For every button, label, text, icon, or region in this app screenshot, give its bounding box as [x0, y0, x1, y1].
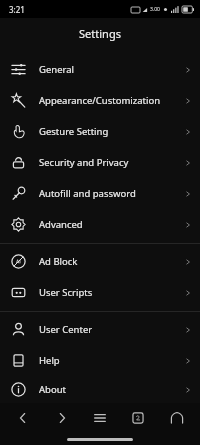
button[interactable]: General [0, 54, 200, 85]
button[interactable]: User Scripts [0, 277, 200, 308]
button[interactable]: Help [0, 345, 200, 376]
button[interactable]: Menu [85, 403, 115, 433]
button[interactable]: About [0, 376, 200, 403]
staticText: 3.00 [150, 6, 160, 13]
staticText: Ad Block [39, 255, 184, 268]
staticText: Settings [79, 26, 121, 41]
button[interactable]: Forward [47, 403, 77, 433]
staticText: Gesture Setting [39, 125, 184, 138]
staticText: General [39, 63, 184, 76]
button[interactable]: Ad Block [0, 246, 200, 277]
button[interactable]: Home [162, 403, 192, 433]
staticText: Autofill and password management [39, 187, 184, 200]
staticText: 3:21 [9, 4, 25, 15]
button[interactable]: Tabs [123, 403, 153, 433]
button[interactable]: Appearance/Customization [0, 85, 200, 116]
staticText: User Center [39, 323, 184, 336]
button[interactable]: Back [8, 403, 38, 433]
button[interactable]: Autofill and password management [0, 178, 200, 209]
staticText: Help [39, 354, 184, 367]
button[interactable]: Advanced [0, 209, 200, 240]
staticText: Appearance/Customization [39, 94, 184, 107]
staticText: Advanced [39, 218, 184, 231]
button[interactable]: User Center [0, 314, 200, 345]
staticText: About [39, 383, 184, 396]
staticText: User Scripts [39, 286, 184, 299]
button[interactable]: Gesture Setting [0, 116, 200, 147]
staticText: Security and Privacy [39, 156, 184, 169]
button[interactable]: Security and Privacy [0, 147, 200, 178]
